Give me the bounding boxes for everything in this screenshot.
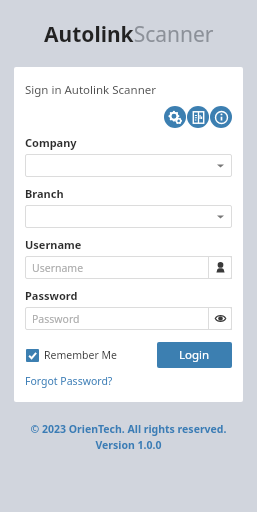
staticText: © 2023 OrienTech. All rights reserved.	[0, 422, 257, 436]
staticText: AutolinkScanner	[44, 20, 214, 49]
button[interactable]	[25, 205, 232, 228]
staticText: Company	[25, 135, 77, 150]
button[interactable]: Login	[157, 342, 232, 368]
staticText: Password	[25, 288, 78, 303]
button[interactable]: User account	[208, 256, 232, 279]
staticText: Branch	[25, 186, 64, 201]
staticText: Sign in Autolink Scanner	[25, 82, 156, 98]
button[interactable]: About	[210, 106, 232, 128]
staticText: Forgot Password?	[25, 374, 113, 388]
button[interactable]: Forgot Password?	[25, 373, 113, 389]
button[interactable]: Password	[25, 307, 208, 330]
staticText: Username	[25, 237, 82, 252]
button[interactable]: Remember Me	[25, 345, 118, 365]
staticText: Remember Me	[44, 348, 117, 362]
button[interactable]: Reports	[187, 106, 209, 128]
button[interactable]: Username	[25, 256, 208, 279]
staticText: Login	[179, 347, 210, 363]
button[interactable]	[25, 154, 232, 177]
staticText: Version 1.0.0	[0, 438, 257, 452]
staticText: Username	[32, 261, 84, 275]
staticText: Password	[32, 312, 80, 326]
button[interactable]: Show password	[208, 307, 232, 330]
button[interactable]: Settings	[164, 106, 186, 128]
